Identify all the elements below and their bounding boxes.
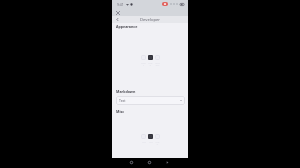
- staticText: Developer: [140, 17, 161, 23]
- button[interactable]: System: [155, 55, 160, 67]
- button[interactable]: Close: [114, 9, 121, 16]
- staticText: 9:41: [117, 2, 124, 7]
- button[interactable]: Text: [116, 96, 185, 105]
- staticText: Off: [142, 140, 146, 143]
- staticText: System: [155, 61, 160, 67]
- button[interactable]: Recents: [128, 159, 134, 165]
- button[interactable]: Home: [146, 159, 152, 165]
- staticText: Markdown: [116, 89, 136, 94]
- staticText: Text: [119, 98, 126, 103]
- staticText: Appearance: [116, 24, 138, 29]
- button[interactable]: On: [148, 134, 153, 143]
- button[interactable]: Off: [141, 134, 146, 143]
- button[interactable]: Dark: [148, 55, 153, 67]
- button[interactable]: Back: [164, 159, 170, 165]
- button[interactable]: Back: [114, 16, 121, 23]
- button[interactable]: Auto: [155, 134, 160, 146]
- button[interactable]: Light: [141, 55, 146, 67]
- staticText: Misc: [116, 109, 125, 114]
